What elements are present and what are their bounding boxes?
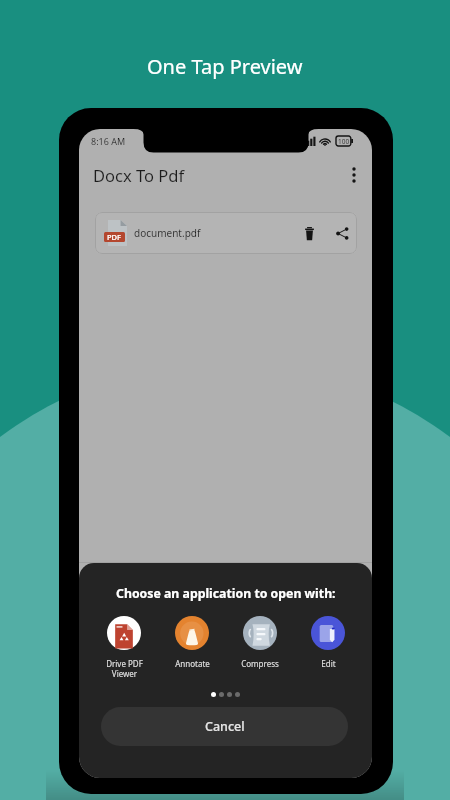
button[interactable]: More options xyxy=(336,157,372,193)
staticText: 100 xyxy=(338,137,350,146)
staticText: 8:16 AM xyxy=(91,135,126,147)
staticText: PDF xyxy=(107,232,122,242)
staticText: Cancel xyxy=(205,718,245,735)
button[interactable]: Share xyxy=(328,219,356,247)
button[interactable]: Delete xyxy=(295,219,323,247)
button[interactable]: Cancel xyxy=(101,707,348,746)
button[interactable]: Drive PDF Viewer xyxy=(99,616,149,679)
staticText: document.pdf xyxy=(134,226,201,240)
staticText: Docx To Pdf xyxy=(93,164,185,186)
button[interactable]: Annotate xyxy=(167,616,217,669)
button[interactable]: Compress xyxy=(235,616,285,669)
staticText: One Tap Preview xyxy=(147,53,303,80)
staticText: Annotate xyxy=(175,658,210,669)
staticText: Compress xyxy=(241,658,279,669)
button[interactable]: PDF xyxy=(95,212,357,254)
staticText: Drive PDF Viewer xyxy=(106,658,143,679)
staticText: Choose an application to open with: xyxy=(116,585,336,602)
button[interactable]: Edit xyxy=(303,616,353,669)
staticText: Edit xyxy=(321,658,336,669)
